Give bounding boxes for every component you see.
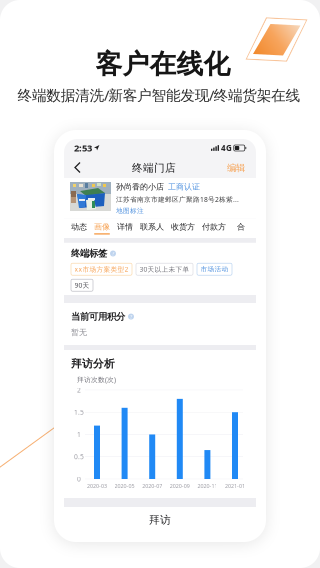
staticText: 市场活动 <box>200 265 228 273</box>
button[interactable]: 拜访 <box>64 507 256 533</box>
staticText: 4G <box>221 143 232 153</box>
button[interactable]: 画像 <box>94 218 110 238</box>
staticText: 画像 <box>94 222 110 232</box>
staticText: 2020-11 <box>197 482 217 489</box>
staticText: 2020-03 <box>87 482 107 489</box>
staticText: 终端门店 <box>132 161 176 174</box>
staticText: 详情 <box>117 222 133 232</box>
staticText: 2 <box>77 386 81 394</box>
button[interactable]: 90天 <box>71 279 93 291</box>
staticText: 2:53 <box>74 142 92 154</box>
staticText: 拜访次数(次) <box>77 375 116 384</box>
staticText: 收货方 <box>171 222 195 232</box>
button[interactable]: 返回 <box>69 157 87 179</box>
button[interactable]: 30天以上未下单 <box>136 263 193 275</box>
staticText: 客户在线化 <box>95 48 230 80</box>
staticText: 付款方 <box>202 222 226 232</box>
button[interactable]: 市场活动 <box>197 263 232 275</box>
staticText: 2020-07 <box>142 482 162 489</box>
staticText: 编辑 <box>227 162 245 174</box>
staticText: 联系人 <box>140 222 164 232</box>
staticText: 江苏省南京市建邺区广聚路18号2栋紫金科技创… <box>116 195 245 204</box>
staticText: ? <box>112 250 114 257</box>
button[interactable]: 付款方 <box>202 218 226 238</box>
staticText: 地图标注 <box>116 207 144 215</box>
staticText: 1 <box>77 430 81 439</box>
button[interactable]: 合 <box>233 218 249 238</box>
staticText: 2020-05 <box>115 482 135 489</box>
staticText: ? <box>130 313 132 320</box>
staticText: 2021-01 <box>225 482 245 489</box>
staticText: 1.5 <box>74 408 84 417</box>
staticText: 暂无 <box>71 327 87 337</box>
staticText: 工商认证 <box>168 182 200 192</box>
staticText: 0.5 <box>74 452 84 461</box>
staticText: 孙尚香的小店 <box>116 182 164 192</box>
button[interactable]: xx市场方案类型2 <box>71 263 132 275</box>
staticText: 终端标签 <box>71 248 107 259</box>
staticText: 0 <box>77 475 81 483</box>
button[interactable]: 动态 <box>71 218 87 238</box>
staticText: 2020-09 <box>170 482 190 489</box>
staticText: 30天以上未下单 <box>139 265 189 274</box>
staticText: xx市场方案类型2 <box>74 265 128 274</box>
button[interactable]: 编辑 <box>221 157 251 179</box>
staticText: 当前可用积分 <box>71 311 125 322</box>
button[interactable]: 联系人 <box>140 218 164 238</box>
staticText: 拜访分析 <box>71 357 115 370</box>
button[interactable]: 收货方 <box>171 218 195 238</box>
staticText: 动态 <box>71 222 87 232</box>
staticText: 终端数据清洗/新客户智能发现/终端货架在线 <box>17 85 300 105</box>
staticText: 90天 <box>74 281 89 290</box>
staticText: 合 <box>237 222 245 232</box>
staticText: 拜访 <box>149 513 171 526</box>
button[interactable]: 详情 <box>117 218 133 238</box>
